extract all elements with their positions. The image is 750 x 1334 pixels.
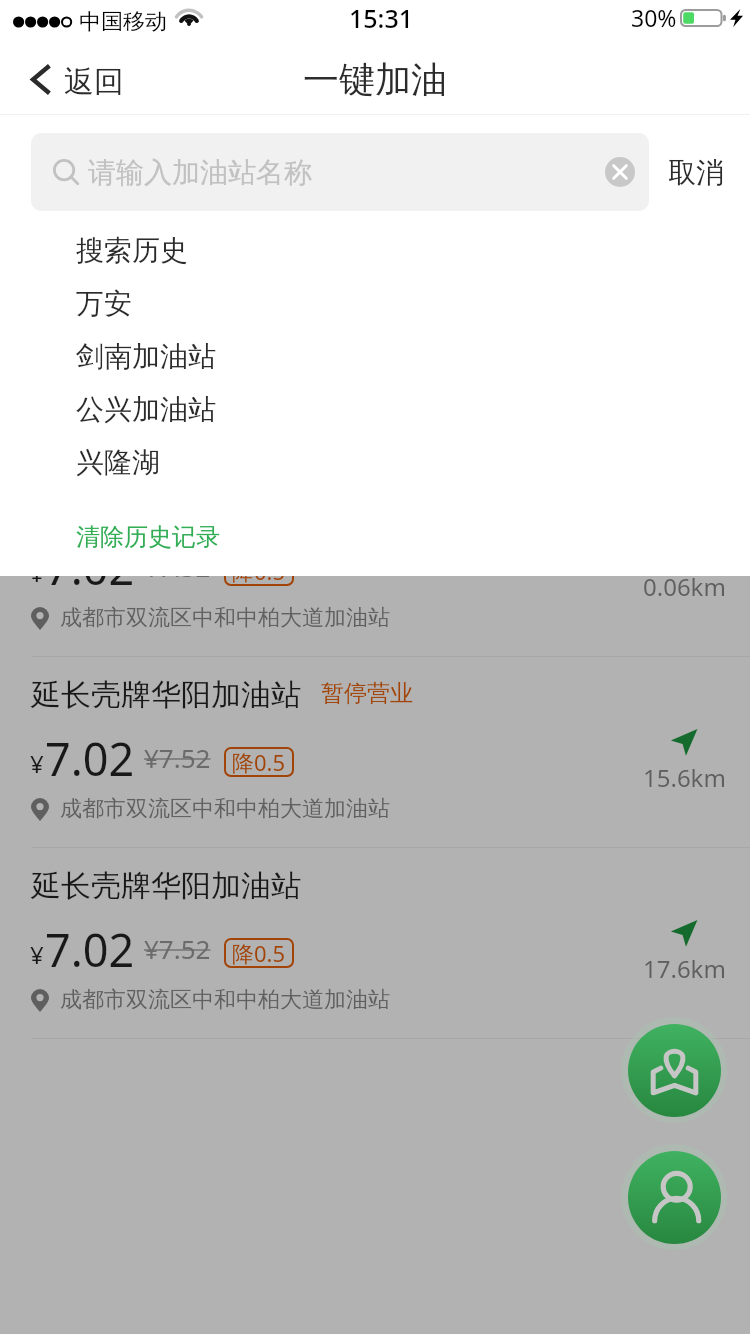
- staticText: ¥: [30, 556, 44, 589]
- staticText: 降0.5: [232, 556, 286, 586]
- staticText: 清除历史记录: [76, 522, 220, 552]
- button[interactable]: Back: [0, 44, 150, 115]
- button[interactable]: 延长壳牌华阳加油站: [0, 847, 750, 1038]
- button[interactable]: 延长壳牌华阳加油站: [0, 656, 750, 847]
- staticText: ¥: [30, 938, 44, 971]
- staticText: 万安: [76, 286, 132, 321]
- staticText: 延长壳牌华阳加油站: [31, 867, 301, 905]
- button[interactable]: Clear text: [589, 141, 649, 203]
- staticText: 降0.5: [232, 747, 286, 777]
- staticText: 请输入加油站名称: [88, 155, 312, 190]
- staticText: 公兴加油站: [76, 392, 216, 427]
- button[interactable]: 清除历史记录: [0, 511, 750, 563]
- button[interactable]: 公兴加油站: [0, 383, 750, 436]
- button[interactable]: Profile: [621, 1144, 727, 1250]
- button[interactable]: 搜索历史: [0, 224, 750, 277]
- staticText: 7.02: [45, 919, 135, 980]
- staticText: 成都市双流区中和中柏大道加油站: [60, 795, 390, 823]
- staticText: 7.02: [45, 537, 135, 598]
- staticText: 兴隆湖: [76, 445, 160, 480]
- staticText: 降0.5: [232, 938, 286, 968]
- staticText: 暂停营业: [321, 679, 413, 708]
- button[interactable]: 兴隆湖: [0, 436, 750, 489]
- staticText: 剑南加油站: [76, 339, 216, 374]
- staticText: 17.6km: [643, 952, 726, 985]
- staticText: ¥7.52: [144, 931, 211, 966]
- staticText: 成都市双流区中和中柏大道加油站: [60, 604, 390, 632]
- staticText: ¥7.52: [144, 549, 211, 584]
- button[interactable]: 万安: [0, 277, 750, 330]
- staticText: 15.6km: [643, 761, 726, 794]
- staticText: 搜索历史: [76, 233, 188, 268]
- button[interactable]: 剑南加油站: [0, 330, 750, 383]
- staticText: 7.02: [45, 728, 135, 789]
- staticText: 返回: [64, 63, 124, 101]
- staticText: 30%: [631, 2, 677, 33]
- staticText: 15:31: [349, 1, 414, 35]
- staticText: ¥: [30, 747, 44, 780]
- staticText: 中国移动: [79, 8, 167, 36]
- button[interactable]: 延长壳牌华阳加油站: [0, 465, 750, 656]
- button[interactable]: 请输入加油站名称: [31, 133, 649, 211]
- button[interactable]: 取消: [656, 133, 736, 211]
- staticText: 一键加油: [303, 57, 447, 102]
- staticText: 成都市双流区中和中柏大道加油站: [60, 986, 390, 1014]
- staticText: ¥7.52: [144, 740, 211, 775]
- button[interactable]: Map: [621, 1017, 727, 1123]
- staticText: 延长壳牌华阳加油站: [31, 676, 301, 714]
- staticText: 取消: [668, 155, 724, 190]
- staticText: 0.06km: [643, 570, 726, 603]
